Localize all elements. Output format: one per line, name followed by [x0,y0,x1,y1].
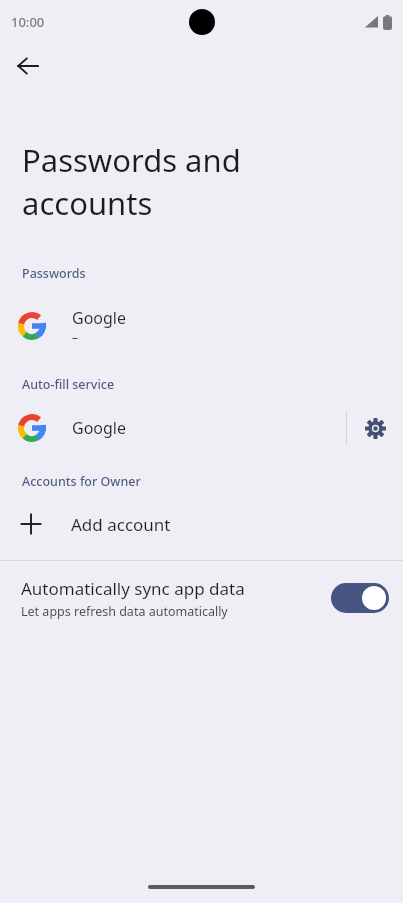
staticText: Accounts for Owner [22,473,141,490]
button[interactable]: Google [0,300,403,352]
staticText: Automatically sync app data [21,577,245,600]
staticText: Add account [71,513,171,536]
staticText: Google [72,417,127,439]
button[interactable]: Google [0,405,346,451]
button[interactable]: Back [6,44,50,88]
staticText: Google [72,307,127,329]
staticText: 10:00 [11,13,45,31]
button[interactable]: Automatically sync app data [0,561,403,635]
staticText: Passwords [22,265,86,282]
staticText: – [72,329,79,345]
button[interactable]: Auto-fill settings [347,405,403,451]
staticText: Let apps refresh data automatically [21,603,228,620]
button[interactable]: Add account [0,500,403,548]
staticText: Passwords and accounts [22,139,241,224]
button[interactable]: Automatically sync app data [331,583,389,613]
staticText: Auto-fill service [22,376,115,393]
